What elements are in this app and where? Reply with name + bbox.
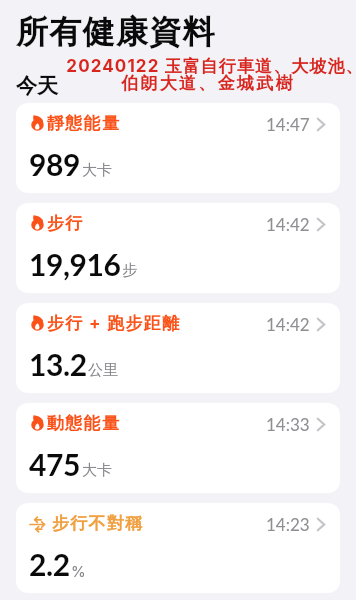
staticText: 動態能量 — [47, 413, 121, 434]
staticText: 14:47 — [266, 114, 310, 134]
staticText: 步行 + 跑步距離 — [47, 313, 181, 335]
staticText: 14:23 — [266, 514, 310, 534]
staticText: 大卡 — [82, 161, 112, 180]
button[interactable]: 靜態能量 — [16, 103, 340, 193]
staticText: 步行 — [47, 213, 84, 234]
staticText: 伯朗大道、金城武樹 — [121, 73, 295, 94]
staticText: 19,916 — [29, 246, 121, 282]
staticText: 989 — [29, 146, 81, 182]
staticText: 步行不對稱 — [52, 513, 144, 534]
staticText: % — [71, 562, 86, 580]
button[interactable]: 步行不對稱 — [16, 503, 340, 593]
staticText: 20240122 玉富自行車道、大坡池、 — [66, 56, 356, 78]
staticText: 步 — [122, 261, 137, 280]
staticText: 2.2 — [29, 546, 70, 582]
staticText: 475 — [29, 446, 81, 482]
staticText: 14:42 — [266, 214, 310, 234]
staticText: 14:33 — [266, 414, 310, 434]
staticText: 公里 — [88, 361, 118, 380]
staticText: 所有健康資料 — [16, 12, 216, 52]
staticText: 今天 — [16, 73, 58, 99]
staticText: 14:42 — [266, 314, 310, 334]
button[interactable]: 步行 + 跑步距離 — [16, 303, 340, 393]
staticText: 靜態能量 — [47, 113, 121, 134]
staticText: 13.2 — [29, 346, 87, 382]
staticText: 大卡 — [82, 461, 112, 480]
button[interactable]: 動態能量 — [16, 403, 340, 493]
button[interactable]: 步行 — [16, 203, 340, 293]
